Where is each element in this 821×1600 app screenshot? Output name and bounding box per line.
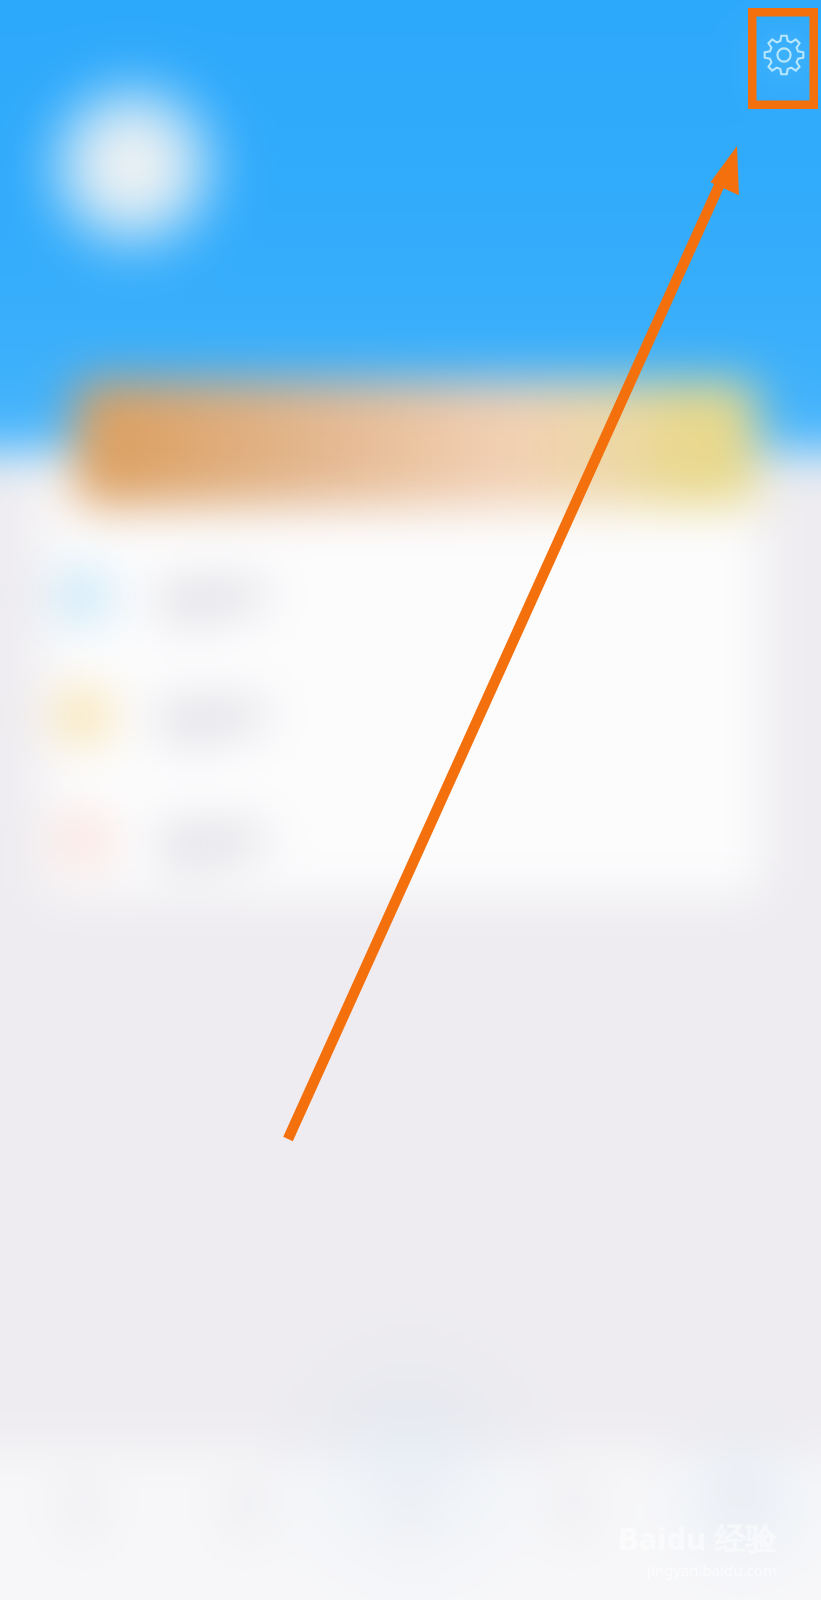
staticText: Baidu 经验 [618,1517,777,1559]
button[interactable]: Air quality [42,536,762,656]
button[interactable]: Hourly forecast [42,656,762,776]
button[interactable]: Me [657,1452,821,1600]
button[interactable]: Radar [329,1452,493,1600]
button[interactable]: Settings [754,25,814,85]
button[interactable]: Current weather [74,380,746,506]
button[interactable]: Life index [42,776,762,896]
